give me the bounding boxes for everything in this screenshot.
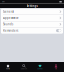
button[interactable]: General bbox=[1, 9, 63, 15]
staticText: Search bbox=[21, 68, 27, 70]
button[interactable]: Search bbox=[16, 62, 32, 72]
staticText: Sounds bbox=[3, 22, 13, 26]
staticText: Reminders bbox=[3, 29, 18, 32]
staticText: Me bbox=[55, 68, 57, 70]
staticText: Settings bbox=[26, 4, 37, 8]
button[interactable]: Sounds bbox=[1, 21, 63, 27]
button[interactable]: Appearance bbox=[1, 15, 63, 21]
button[interactable]: Home bbox=[0, 62, 16, 72]
staticText: Appearance bbox=[3, 16, 19, 20]
button[interactable]: Reminders bbox=[1, 28, 63, 34]
staticText: Home bbox=[6, 68, 10, 70]
button[interactable]: Saved bbox=[32, 62, 48, 72]
staticText: Saved bbox=[37, 68, 42, 70]
button[interactable]: Me bbox=[48, 62, 64, 72]
staticText: General bbox=[3, 10, 14, 13]
staticText: 9:41 bbox=[2, 1, 5, 3]
